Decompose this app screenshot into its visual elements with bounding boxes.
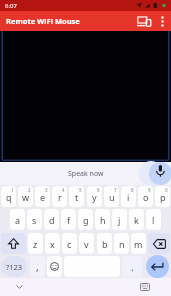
staticText: 0 — [165, 187, 168, 193]
button[interactable]: w — [18, 186, 33, 207]
button[interactable]: k — [129, 209, 144, 230]
staticText: m — [134, 238, 143, 250]
staticText: t — [75, 191, 79, 203]
staticText: p — [160, 191, 166, 203]
button[interactable]: q — [1, 186, 16, 207]
button[interactable]: y — [87, 186, 102, 207]
button[interactable]: p — [155, 186, 170, 207]
staticText: . — [131, 260, 134, 274]
button[interactable] — [47, 256, 62, 277]
staticText: 7 — [114, 187, 117, 193]
staticText: 4 — [62, 187, 65, 193]
button[interactable]: z — [28, 233, 43, 254]
button[interactable]: j — [112, 209, 127, 230]
staticText: w — [22, 191, 30, 203]
staticText: b — [102, 238, 108, 250]
button[interactable] — [139, 281, 151, 293]
staticText: , — [36, 260, 39, 274]
button[interactable]: c — [62, 233, 77, 254]
button[interactable] — [133, 11, 155, 31]
staticText: x — [50, 238, 55, 250]
button[interactable] — [13, 281, 25, 293]
staticText: h — [100, 214, 106, 226]
staticText: 8 — [131, 187, 134, 193]
staticText: j — [118, 214, 121, 226]
button[interactable] — [148, 233, 170, 254]
button[interactable]: n — [114, 233, 129, 254]
button[interactable]: v — [79, 233, 94, 254]
button[interactable]: o — [138, 186, 153, 207]
button[interactable] — [146, 255, 169, 278]
button[interactable]: t — [69, 186, 84, 207]
staticText: e — [40, 191, 46, 203]
button[interactable]: m — [131, 233, 146, 254]
button[interactable]: x — [45, 233, 60, 254]
button[interactable] — [155, 11, 169, 31]
button[interactable]: h — [95, 209, 110, 230]
button[interactable]: a — [10, 209, 25, 230]
button[interactable]: s — [27, 209, 42, 230]
button[interactable]: Speak now — [0, 162, 171, 185]
staticText: z — [33, 238, 38, 250]
button[interactable] — [0, 31, 171, 162]
button[interactable]: r — [52, 186, 67, 207]
staticText: Speak now — [68, 169, 104, 179]
staticText: k — [134, 214, 139, 226]
staticText: v — [84, 238, 89, 250]
staticText: n — [119, 238, 125, 250]
button[interactable]: g — [78, 209, 93, 230]
staticText: q — [6, 191, 12, 203]
button[interactable]: i — [121, 186, 136, 207]
staticText: y — [92, 191, 97, 203]
button[interactable]: u — [104, 186, 119, 207]
staticText: ?123 — [6, 262, 23, 272]
staticText: 2 — [28, 187, 31, 193]
staticText: f — [67, 214, 71, 226]
staticText: a — [15, 214, 21, 226]
button[interactable]: . — [122, 256, 142, 277]
staticText: l — [152, 214, 155, 226]
staticText: 5 — [79, 187, 82, 193]
button[interactable]: d — [44, 209, 59, 230]
staticText: r — [58, 191, 62, 203]
staticText: Remote WiFi Mouse — [6, 16, 80, 26]
staticText: 3 — [45, 187, 48, 193]
staticText: o — [143, 191, 149, 203]
button[interactable]: b — [97, 233, 112, 254]
button[interactable]: f — [61, 209, 76, 230]
button[interactable]: l — [146, 209, 161, 230]
button[interactable]: e — [35, 186, 50, 207]
staticText: i — [127, 191, 130, 203]
staticText: d — [49, 214, 55, 226]
staticText: 6 — [97, 187, 100, 193]
staticText: s — [32, 214, 37, 226]
staticText: 9 — [148, 187, 151, 193]
button[interactable]: ?123 — [1, 256, 27, 277]
staticText: c — [67, 238, 72, 250]
staticText: 6:07 — [5, 2, 17, 10]
button[interactable]: , — [30, 256, 45, 277]
staticText: u — [109, 191, 115, 203]
staticText: g — [83, 214, 89, 226]
button[interactable] — [1, 233, 26, 254]
staticText: 1 — [11, 187, 14, 193]
